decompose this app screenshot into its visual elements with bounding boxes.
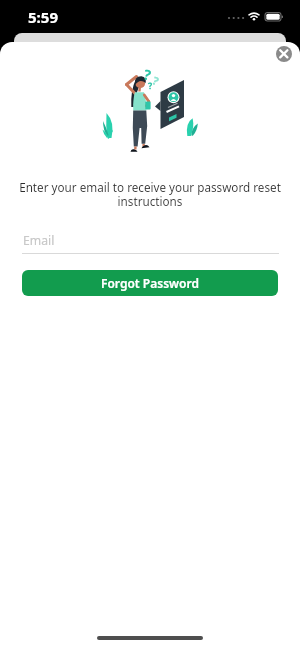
button[interactable]: Forgot Password [22, 270, 278, 296]
staticText: Email [23, 232, 55, 249]
staticText: ? [148, 79, 153, 91]
staticText: Enter your email to receive your passwor… [0, 179, 300, 210]
staticText: 5:59 [28, 7, 58, 27]
staticText: ? [150, 72, 162, 88]
staticText: ? [142, 64, 153, 84]
staticText: Forgot Password [101, 275, 199, 291]
button[interactable]: Email [22, 227, 279, 254]
button[interactable] [276, 46, 292, 62]
